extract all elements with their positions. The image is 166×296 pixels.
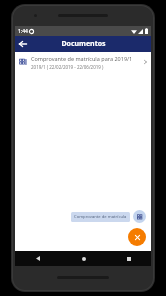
button[interactable]: Back — [15, 36, 31, 52]
button[interactable]: Comprovante de matrícula para 2019/1 — [15, 52, 151, 72]
staticText: Comprovante de matrícula para 2019/1 — [31, 55, 133, 62]
button[interactable]: Back — [15, 251, 61, 266]
button[interactable]: Home — [61, 251, 106, 266]
other: Comprovante de matrícula — [133, 210, 146, 223]
staticText: Comprovante de matrícula — [74, 214, 127, 220]
staticText: 1:44 — [18, 28, 28, 35]
button[interactable]: Comprovante de matrícula — [71, 210, 146, 223]
staticText: 2019/1 ( 22/02/2019 - 22/06/2019 ) — [31, 64, 104, 70]
button[interactable]: Close menu — [128, 228, 146, 246]
staticText: Documentos — [61, 39, 106, 49]
button[interactable]: Recents — [106, 251, 151, 266]
